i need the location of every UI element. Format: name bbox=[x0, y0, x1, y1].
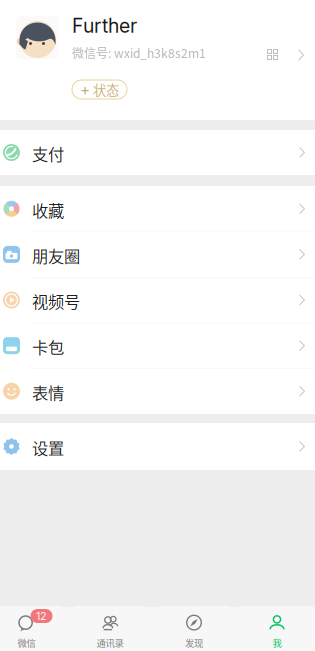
button[interactable]: 朋友圈 bbox=[0, 232, 315, 277]
button[interactable]: 12 bbox=[0, 606, 61, 651]
staticText: 微信号: wxid_h3k8s2m1 bbox=[72, 44, 206, 61]
button[interactable]: 卡包 bbox=[0, 323, 315, 368]
button[interactable]: + bbox=[72, 80, 127, 99]
staticText: 视频号 bbox=[32, 289, 80, 313]
button[interactable]: 支付 bbox=[0, 130, 315, 175]
button[interactable]: 收藏 bbox=[0, 186, 315, 232]
staticText: 通讯录 bbox=[96, 636, 123, 649]
staticText: 表情 bbox=[32, 380, 64, 404]
button[interactable]: 发现 bbox=[159, 606, 229, 651]
staticText: 发现 bbox=[185, 636, 203, 649]
staticText: + bbox=[80, 80, 90, 99]
staticText: 微信 bbox=[17, 636, 35, 649]
button[interactable]: 表情 bbox=[0, 368, 315, 414]
staticText: 收藏 bbox=[32, 198, 64, 222]
staticText: 设置 bbox=[32, 436, 64, 459]
staticText: 朋友圈 bbox=[32, 244, 80, 267]
staticText: 我 bbox=[272, 636, 281, 649]
staticText: 12 bbox=[36, 609, 47, 622]
button[interactable]: 我 bbox=[242, 606, 312, 651]
button[interactable]: 通讯录 bbox=[75, 606, 145, 651]
staticText: Further bbox=[72, 14, 137, 37]
staticText: 卡包 bbox=[32, 335, 64, 358]
button[interactable]: Further bbox=[0, 0, 315, 120]
button[interactable]: 设置 bbox=[0, 423, 315, 470]
staticText: 状态 bbox=[93, 80, 119, 99]
button[interactable]: 视频号 bbox=[0, 277, 315, 323]
staticText: 支付 bbox=[32, 142, 64, 165]
